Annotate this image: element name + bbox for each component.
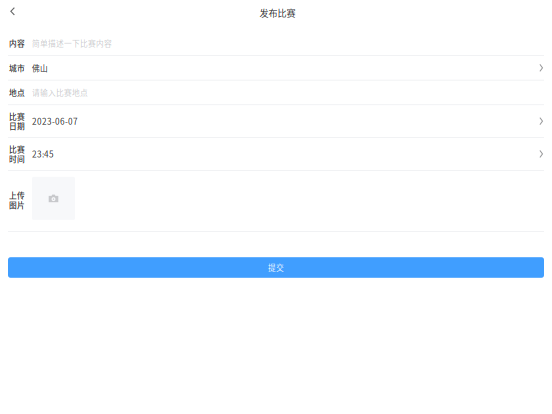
staticText: 时间 (9, 153, 25, 164)
staticText: 比赛 (9, 143, 25, 155)
button[interactable]: 城市 (0, 56, 552, 80)
staticText: 图片 (9, 199, 25, 210)
staticText: 日期 (9, 120, 25, 132)
staticText: 上传 (9, 190, 25, 201)
staticText: 简单描述一下比赛内容 (32, 38, 112, 49)
button[interactable]: 比赛 (0, 138, 552, 170)
staticText: 比赛 (9, 111, 25, 122)
staticText: 城市 (9, 62, 25, 73)
staticText: 23:45 (32, 148, 54, 160)
staticText: 地点 (9, 87, 25, 98)
button[interactable]: 比赛 (0, 105, 552, 137)
staticText: 请输入比赛地点 (32, 87, 88, 98)
button[interactable]: 返回 (3, 1, 23, 21)
staticText: 2023-06-07 (32, 115, 78, 127)
staticText: 发布比赛 (259, 6, 295, 19)
button[interactable]: 上传图片 (32, 177, 75, 220)
staticText: 提交 (268, 262, 284, 273)
staticText: 佛山 (32, 62, 48, 73)
button[interactable]: 提交 (8, 257, 544, 278)
staticText: 内容 (9, 38, 25, 49)
